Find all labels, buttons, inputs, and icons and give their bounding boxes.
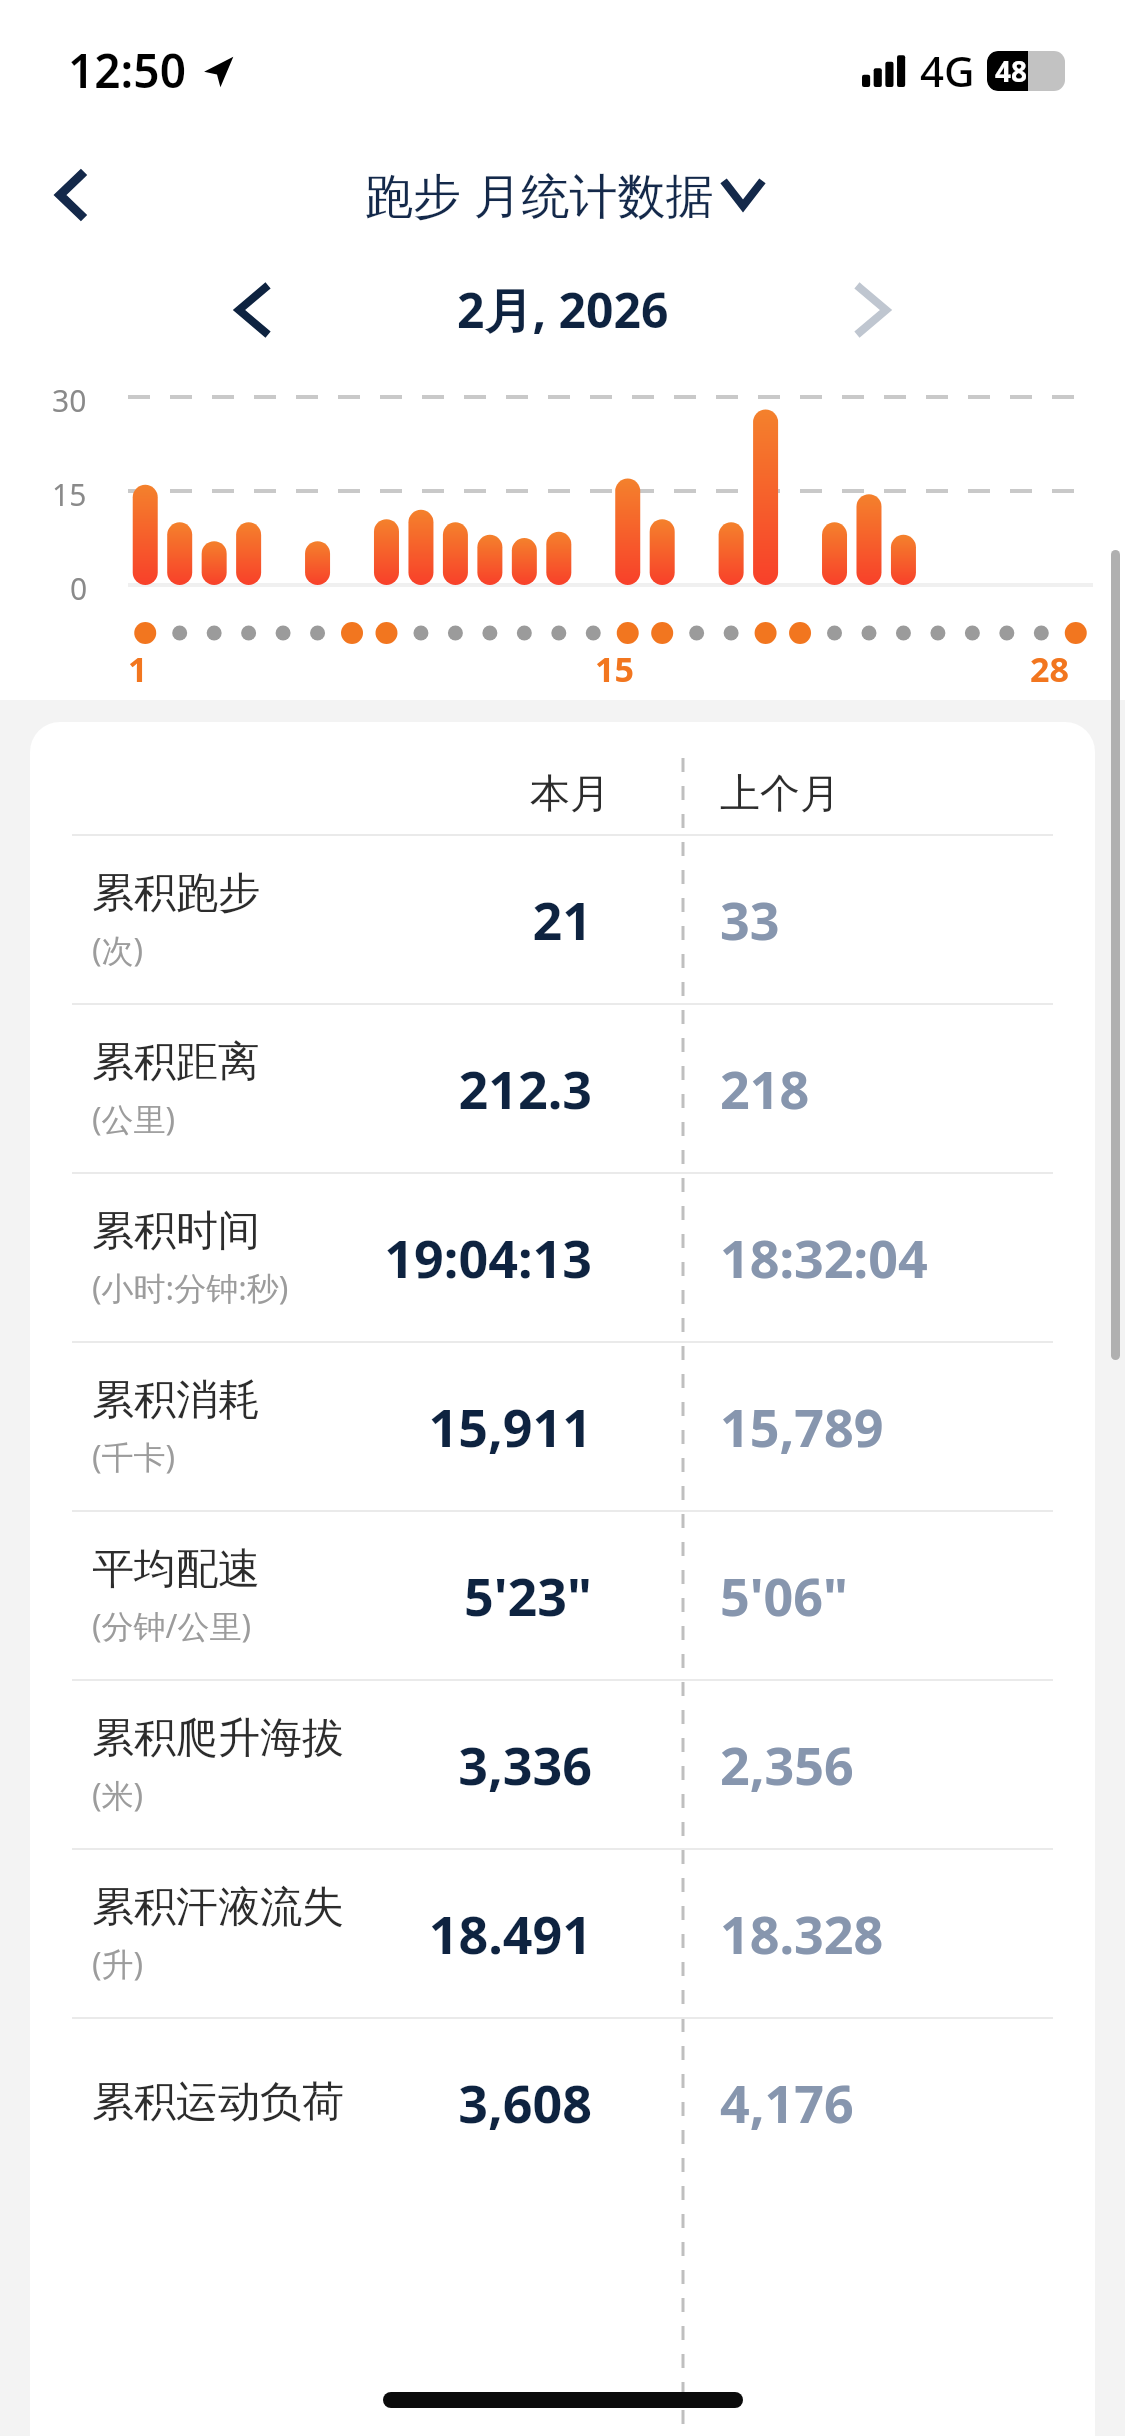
staticText: (千卡) <box>92 1435 176 1479</box>
staticText: 18.328 <box>720 1898 884 1969</box>
staticText: 累积消耗 <box>92 1374 260 1427</box>
staticText: 18.491 <box>30 1898 592 1969</box>
staticText: 累积运动负荷 <box>92 2076 344 2129</box>
staticText: 3,608 <box>30 2067 592 2138</box>
button[interactable]: 累积距离 <box>30 1005 1095 1172</box>
staticText: 15 <box>595 646 634 692</box>
staticText: 2,356 <box>720 1729 854 1800</box>
staticText: (升) <box>92 1942 144 1986</box>
button[interactable]: 累积消耗 <box>30 1343 1095 1510</box>
staticText: 累积汗液流失 <box>92 1881 344 1934</box>
button[interactable]: 累积跑步 <box>30 836 1095 1003</box>
staticText: 累积爬升海拔 <box>92 1712 344 1765</box>
staticText: 19:04:13 <box>30 1222 592 1293</box>
staticText: 3,336 <box>30 1729 592 1800</box>
staticText: 5'23" <box>30 1560 592 1631</box>
staticText: 28 <box>1030 646 1069 692</box>
button[interactable]: Previous month <box>220 278 284 342</box>
staticText: 跑步 月统计数据 <box>365 162 714 228</box>
button[interactable]: 累积爬升海拔 <box>30 1681 1095 1848</box>
button[interactable]: 累积汗液流失 <box>30 1850 1095 2017</box>
button[interactable]: 平均配速 <box>30 1512 1095 1679</box>
button[interactable]: Back <box>34 157 110 233</box>
staticText: (次) <box>92 928 144 972</box>
staticText: 0 <box>70 568 88 609</box>
staticText: 1 <box>128 646 148 692</box>
staticText: (小时:分钟:秒) <box>92 1266 289 1310</box>
staticText: 15,911 <box>30 1391 592 1462</box>
staticText: 累积距离 <box>92 1036 260 1089</box>
staticText: 218 <box>720 1053 810 1124</box>
staticText: 48 <box>995 52 1028 90</box>
staticText: 18:32:04 <box>720 1222 928 1293</box>
staticText: (米) <box>92 1773 144 1817</box>
staticText: 33 <box>720 884 780 955</box>
staticText: 4G <box>920 42 975 99</box>
staticText: 15,789 <box>720 1391 884 1462</box>
button[interactable]: 累积时间 <box>30 1174 1095 1341</box>
staticText: 累积时间 <box>92 1205 260 1258</box>
button[interactable]: 跑步 月统计数据 <box>365 162 760 228</box>
staticText: 上个月 <box>720 768 840 818</box>
staticText: 4,176 <box>720 2067 854 2138</box>
staticText: 30 <box>52 380 87 421</box>
staticText: (公里) <box>92 1097 176 1141</box>
staticText: 2月, 2026 <box>457 277 669 343</box>
button[interactable]: Next month <box>841 278 905 342</box>
button[interactable]: 累积运动负荷 <box>30 2019 1095 2186</box>
staticText: 累积跑步 <box>92 867 260 920</box>
staticText: 平均配速 <box>92 1543 260 1596</box>
staticText: 5'06" <box>720 1560 848 1631</box>
staticText: 21 <box>30 884 592 955</box>
staticText: 212.3 <box>30 1053 592 1124</box>
staticText: 本月 <box>530 768 610 818</box>
staticText: (分钟/公里) <box>92 1604 252 1648</box>
staticText: 12:50 <box>68 39 186 102</box>
staticText: 15 <box>52 474 87 515</box>
